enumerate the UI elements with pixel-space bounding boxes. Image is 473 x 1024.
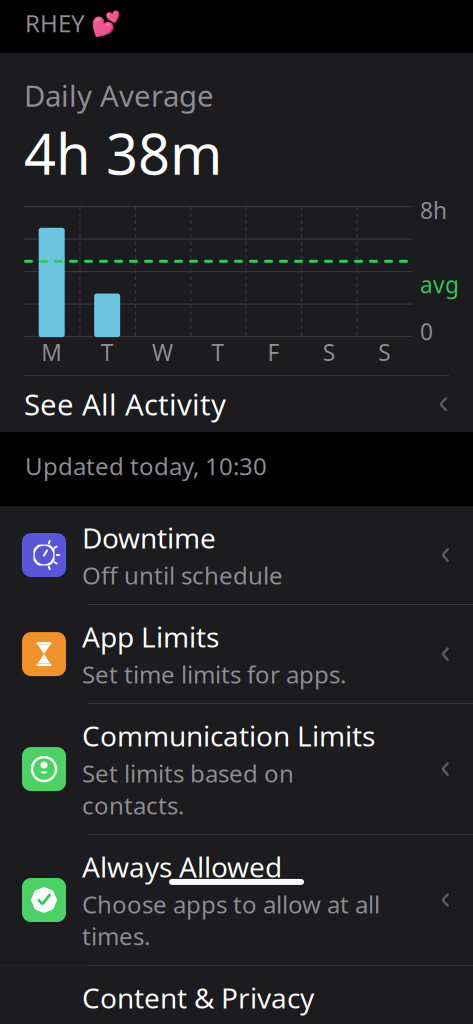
staticText: Choose apps to allow at all times. xyxy=(82,888,380,952)
button[interactable]: Content & Privacy Restrictions xyxy=(0,966,473,1024)
staticText: Always Allowed xyxy=(82,848,282,885)
staticText: See All Activity xyxy=(24,385,226,424)
staticText: S xyxy=(323,337,335,367)
staticText: Downtime xyxy=(82,519,216,556)
staticText: Content & Privacy Restrictions xyxy=(82,979,314,1024)
staticText: T xyxy=(211,337,224,367)
staticText: T xyxy=(101,337,114,367)
button[interactable]: Always Allowed xyxy=(0,835,473,966)
staticText: M xyxy=(41,337,62,367)
staticText: App Limits xyxy=(82,618,219,655)
staticText: avg xyxy=(420,269,459,299)
staticText: W xyxy=(152,337,173,367)
staticText: Updated today, 10:30 xyxy=(25,450,267,482)
staticText: 4h 38m xyxy=(24,116,222,190)
staticText: RHEY 💕 xyxy=(25,7,121,39)
staticText: Set time limits for apps. xyxy=(82,658,346,690)
button[interactable]: Communication Limits xyxy=(0,704,473,835)
staticText: Set limits based on contacts. xyxy=(82,757,294,821)
staticText: S xyxy=(378,337,390,367)
staticText: Communication Limits xyxy=(82,717,375,754)
staticText: F xyxy=(267,337,279,367)
button[interactable]: App Limits xyxy=(0,605,473,704)
staticText: 0 xyxy=(420,316,433,347)
button[interactable]: Downtime xyxy=(0,506,473,605)
staticText: Off until schedule xyxy=(82,559,283,591)
staticText: 8h xyxy=(420,195,447,225)
staticText: Daily Average xyxy=(24,76,214,115)
button[interactable]: See All Activity xyxy=(0,375,473,432)
